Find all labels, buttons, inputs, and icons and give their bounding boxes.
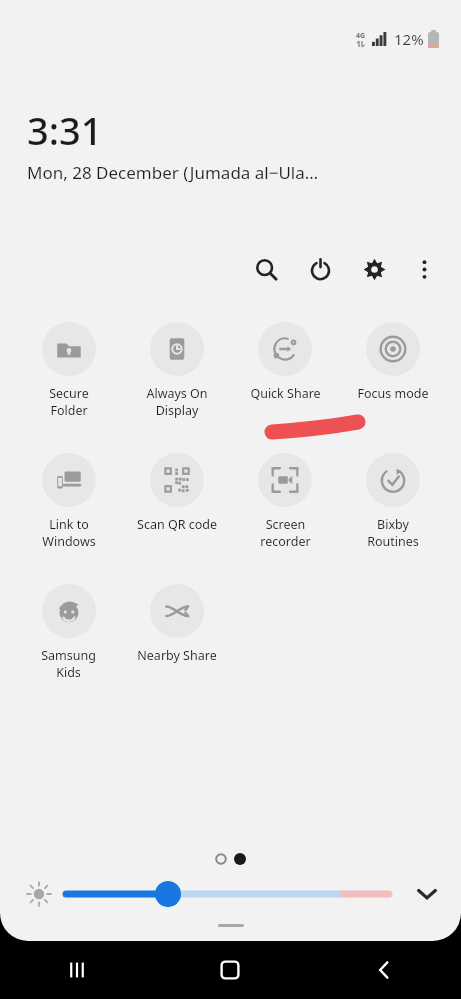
button[interactable]: Samsung Kids [14, 584, 123, 680]
staticText: Scan QR code [137, 516, 217, 533]
staticText: Screen recorder [260, 516, 311, 549]
button[interactable]: Recents [0, 941, 153, 999]
staticText: Always On Display [146, 385, 208, 418]
button[interactable]: Focus mode [339, 322, 447, 402]
staticText: Secure Folder [49, 385, 89, 418]
button[interactable]: Nearby Share [123, 584, 231, 664]
button[interactable]: Bixby Routines [339, 453, 447, 549]
staticText: Bixby Routines [367, 516, 419, 549]
button[interactable]: Quick Share [231, 322, 339, 402]
button[interactable]: Scan QR code [123, 453, 231, 533]
staticText: 4G [356, 31, 366, 41]
button[interactable]: Always On Display [123, 322, 231, 418]
staticText: Nearby Share [137, 647, 217, 664]
button[interactable]: Screen recorder [231, 453, 339, 549]
button[interactable]: Power off [297, 246, 343, 292]
button[interactable]: Brightness [64, 877, 391, 911]
button[interactable]: Back [307, 941, 461, 999]
button[interactable]: Settings [351, 246, 397, 292]
staticText: 12% [394, 29, 424, 49]
button[interactable]: More options [401, 246, 447, 292]
staticText: Link to Windows [42, 516, 96, 549]
staticText: Focus mode [357, 385, 429, 402]
staticText: Quick Share [250, 385, 321, 402]
button[interactable]: Secure Folder [14, 322, 123, 418]
button[interactable]: Expand [407, 874, 447, 914]
button[interactable]: Home [153, 941, 307, 999]
button[interactable]: Link to Windows [14, 453, 123, 549]
staticText: Mon, 28 December (Jumada al−Ula… [27, 161, 319, 184]
staticText: 3:31 [27, 104, 103, 156]
staticText: Samsung Kids [41, 647, 96, 680]
button[interactable]: Search [243, 246, 289, 292]
